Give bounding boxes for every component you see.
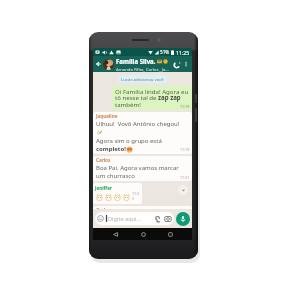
staticText: Carlos (96, 157, 111, 163)
staticText: Carlos (96, 207, 111, 209)
button[interactable]: Jaqueline (93, 112, 192, 154)
staticText: 11:31 (180, 175, 190, 180)
staticText: 11:25 (176, 49, 190, 56)
staticText: Família Silva. (116, 57, 156, 65)
staticText: Boa Pai. Agora vamos marcar (96, 164, 179, 172)
staticText: Oi Família linda! Agora eu tô nesse tal … (115, 87, 190, 109)
staticText: Agora sim o grupo está (96, 137, 162, 145)
button[interactable]: Recents (165, 229, 175, 239)
button[interactable]: Scroll to bottom (178, 185, 188, 195)
button[interactable]: Call (172, 60, 181, 69)
button[interactable]: Voice message (176, 212, 190, 226)
button[interactable]: More options (182, 60, 190, 68)
staticText: Lucas adicionou você (121, 76, 164, 82)
staticText: Ulhuu! Vovô Antônio chegou! (96, 120, 180, 128)
staticText: Jaqueline (96, 113, 118, 119)
staticText: completo! (96, 145, 126, 153)
staticText: 11:19 (180, 104, 190, 109)
button[interactable]: Jeniffer (93, 183, 142, 204)
button[interactable]: Home (138, 229, 148, 239)
staticText: um churrasco (96, 172, 135, 180)
button[interactable]: Back (110, 229, 120, 239)
staticText: 11:19 (180, 147, 190, 152)
staticText: 11:35 (132, 191, 140, 201)
staticText: Jeniffer (95, 185, 112, 191)
button[interactable]: Back (93, 56, 192, 72)
button[interactable]: Carlos (93, 156, 192, 181)
button[interactable]: Attach (154, 215, 162, 223)
staticText: Amanda Filha, Carlos , Ja... (116, 66, 169, 72)
button[interactable]: Digite aqui... (95, 212, 174, 225)
button[interactable]: Oi Família linda! Agora eu tô nesse tal … (112, 86, 192, 110)
button[interactable]: Back (94, 60, 102, 68)
staticText: 51% (160, 49, 170, 55)
button[interactable]: Camera (164, 215, 172, 223)
staticText: Digite aqui... (108, 215, 142, 223)
